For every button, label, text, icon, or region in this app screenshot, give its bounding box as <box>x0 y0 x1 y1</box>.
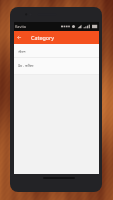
staticText: Kavita <box>15 24 26 29</box>
staticText: Category <box>31 34 54 41</box>
staticText: प्रेम - कविता <box>18 63 34 68</box>
staticText: जीवन <box>18 49 26 54</box>
button[interactable]: Back <box>14 31 25 44</box>
button[interactable]: प्रेम - कविता <box>14 58 99 74</box>
button[interactable]: जीवन <box>14 44 99 57</box>
